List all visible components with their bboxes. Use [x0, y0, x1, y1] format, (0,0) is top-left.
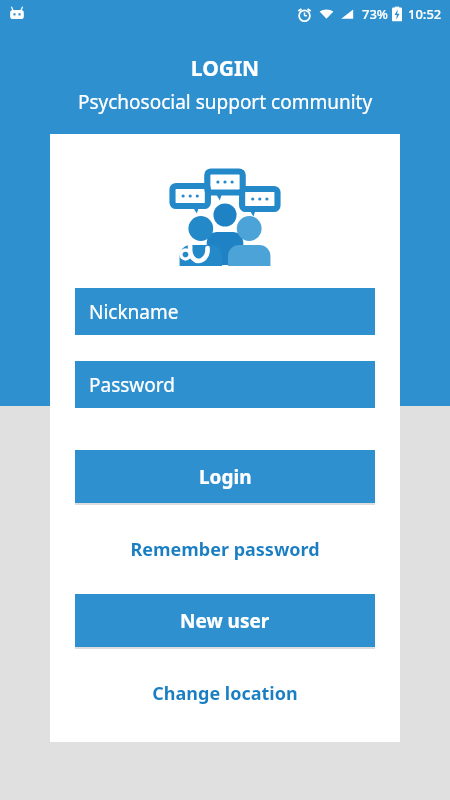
button[interactable]: Login	[75, 450, 375, 503]
other: App icon	[8, 5, 26, 23]
button[interactable]: Nickname	[75, 288, 375, 335]
staticText: Psychosocial support community	[0, 89, 450, 115]
button[interactable]: Change location	[50, 681, 400, 706]
button[interactable]: Password	[75, 361, 375, 408]
staticText: Nickname	[89, 299, 179, 325]
staticText: 73%	[362, 5, 388, 23]
staticText: Change location	[152, 681, 298, 706]
staticText: Login	[199, 464, 252, 490]
staticText: 10:52	[408, 5, 442, 23]
staticText: Remember password	[130, 537, 320, 562]
button[interactable]: New user	[75, 594, 375, 647]
staticText: New user	[180, 608, 270, 634]
button[interactable]: Remember password	[50, 537, 400, 562]
staticText: LOGIN	[0, 54, 450, 83]
staticText: Password	[89, 372, 175, 398]
